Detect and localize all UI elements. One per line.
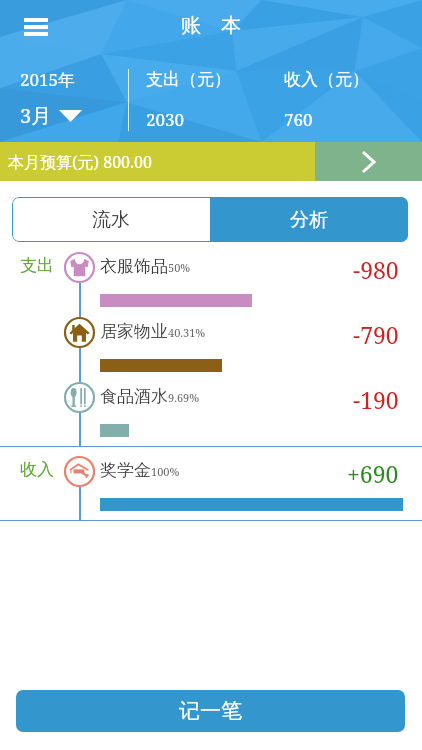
button[interactable]: 分析 xyxy=(210,197,408,242)
staticText: -790 xyxy=(353,319,399,350)
staticText: 100% xyxy=(151,464,180,479)
staticText: 收入 xyxy=(20,459,54,480)
button[interactable]: 收入 xyxy=(0,452,422,517)
staticText: 衣服饰品 xyxy=(100,256,168,277)
staticText: 本月预算(元) 800.00 xyxy=(8,151,152,173)
staticText: 支出 xyxy=(20,255,54,276)
button[interactable]: 居家物业 xyxy=(0,313,422,378)
staticText: 居家物业 xyxy=(100,321,168,342)
staticText: 记一笔 xyxy=(179,698,242,724)
staticText: 2030 xyxy=(146,108,185,131)
button[interactable]: 记一笔 xyxy=(16,690,405,732)
staticText: -980 xyxy=(353,254,399,285)
staticText: 9.69% xyxy=(168,390,200,405)
staticText: 3月 xyxy=(20,102,52,129)
staticText: 760 xyxy=(284,108,313,131)
button[interactable]: 流水 xyxy=(12,197,210,242)
staticText: 奖学金 xyxy=(100,460,151,481)
staticText: 2015年 xyxy=(20,68,76,91)
staticText: 流水 xyxy=(92,208,130,232)
staticText: 50% xyxy=(168,260,191,275)
staticText: 40.31% xyxy=(168,325,206,340)
button[interactable]: Menu xyxy=(12,3,60,51)
staticText: +690 xyxy=(347,458,399,489)
staticText: -190 xyxy=(353,384,399,415)
staticText: 食品酒水 xyxy=(100,386,168,407)
staticText: 收入（元） xyxy=(284,69,369,90)
staticText: 分析 xyxy=(290,208,328,232)
button[interactable]: 食品酒水 xyxy=(0,378,422,443)
staticText: 账 本 xyxy=(181,11,241,38)
button[interactable]: 本月预算(元) 800.00 xyxy=(0,142,422,181)
staticText: 支出（元） xyxy=(146,69,231,90)
button[interactable]: 支出 xyxy=(0,248,422,313)
